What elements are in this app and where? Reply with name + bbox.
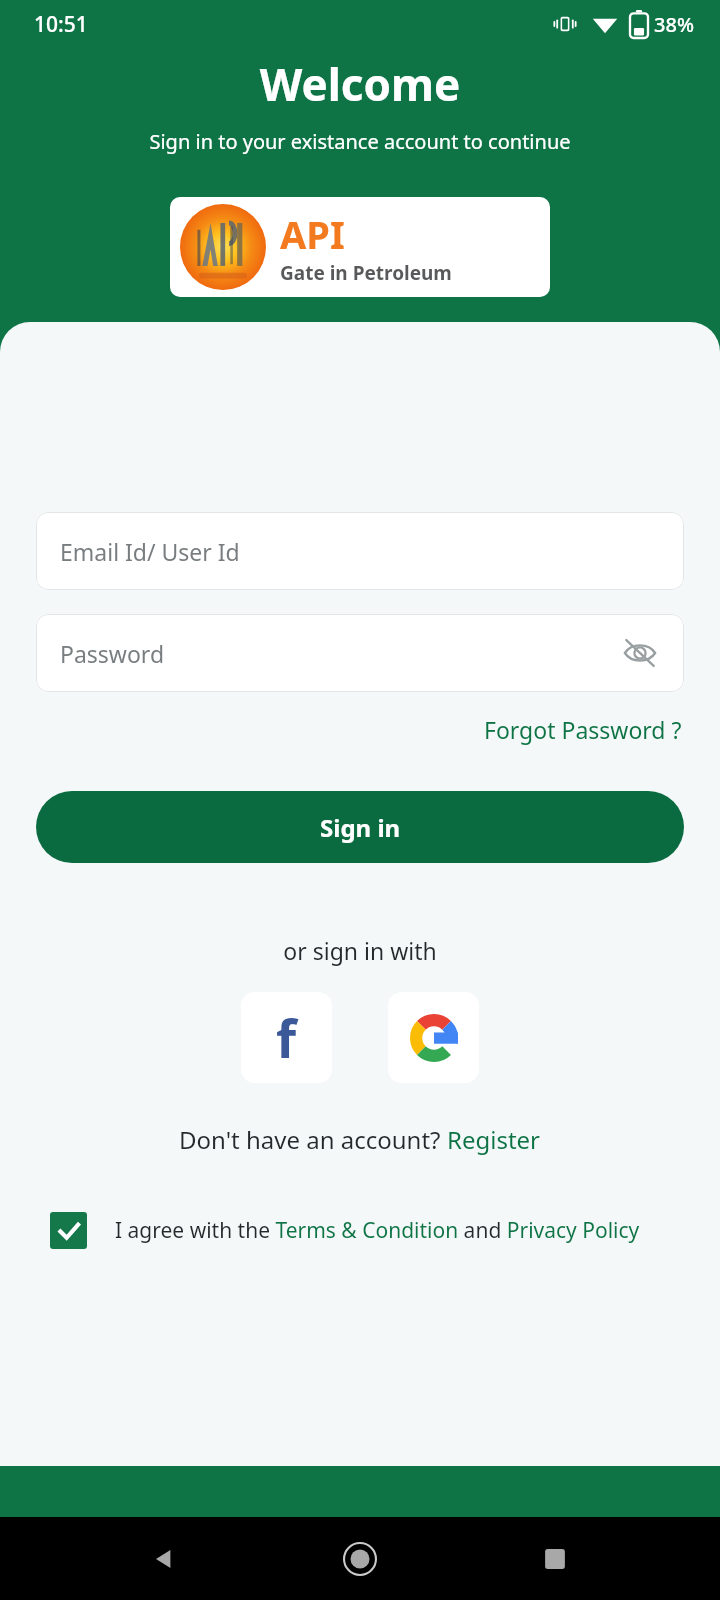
staticText: 38% bbox=[654, 11, 694, 38]
button[interactable]: Show password bbox=[618, 631, 662, 675]
button[interactable]: I agree with the Terms & Condition and P… bbox=[50, 1212, 700, 1249]
staticText: Forgot Password ? bbox=[484, 714, 682, 745]
button[interactable]: Home bbox=[330, 1529, 390, 1589]
staticText: 10:51 bbox=[34, 10, 88, 39]
staticText: Email Id/ User Id bbox=[60, 536, 662, 567]
staticText: Welcome bbox=[0, 54, 720, 114]
staticText: Register bbox=[447, 1123, 541, 1156]
button[interactable]: Sign in with Google bbox=[388, 992, 479, 1083]
button[interactable]: Back bbox=[135, 1529, 195, 1589]
button[interactable]: Forgot Password ? bbox=[482, 710, 684, 749]
button[interactable]: API bbox=[170, 197, 550, 297]
button[interactable]: Sign in bbox=[36, 791, 684, 863]
staticText: f bbox=[276, 1002, 297, 1073]
button[interactable]: Password bbox=[36, 614, 684, 692]
button[interactable]: Don't have an account? bbox=[179, 1123, 541, 1156]
staticText: API bbox=[280, 208, 345, 260]
staticText: Sign in to your existance account to con… bbox=[0, 128, 720, 155]
staticText: Password bbox=[60, 638, 618, 669]
staticText: Gate in Petroleum bbox=[280, 260, 452, 286]
button[interactable]: Sign in with Facebook bbox=[241, 992, 332, 1083]
button[interactable]: Email Id/ User Id bbox=[36, 512, 684, 590]
staticText: I agree with the Terms & Condition and P… bbox=[115, 1216, 640, 1245]
staticText: or sign in with bbox=[0, 935, 720, 966]
staticText: Sign in bbox=[320, 811, 401, 844]
button[interactable]: Recents bbox=[525, 1529, 585, 1589]
staticText: Don't have an account? bbox=[179, 1123, 447, 1156]
